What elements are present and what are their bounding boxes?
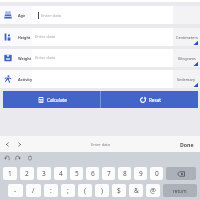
- button[interactable]: Enter data: [32, 6, 173, 24]
- staticText: 9: [139, 169, 143, 178]
- button[interactable]: Previous field: [4, 141, 11, 148]
- button[interactable]: Sedentary: [173, 70, 200, 88]
- button[interactable]: Activity: [0, 70, 200, 88]
- button[interactable]: Backspace: [166, 167, 196, 180]
- button[interactable]: &: [129, 184, 143, 197]
- staticText: /: [32, 186, 35, 195]
- staticText: 0: [155, 169, 159, 178]
- staticText: Done: [180, 141, 194, 148]
- button[interactable]: 0: [150, 167, 163, 180]
- button[interactable]: Undo: [4, 155, 10, 161]
- button[interactable]: ): [95, 184, 109, 197]
- button[interactable]: Enter data: [32, 28, 173, 46]
- button[interactable]: $: [112, 184, 126, 197]
- button[interactable]: Age: [0, 6, 200, 24]
- button[interactable]: Height: [0, 28, 200, 46]
- staticText: Activity: [18, 77, 33, 82]
- staticText: ): [101, 186, 103, 195]
- staticText: 8: [123, 169, 127, 178]
- staticText: 2: [25, 169, 29, 178]
- button[interactable]: Paste: [27, 155, 33, 161]
- staticText: ;: [67, 186, 69, 195]
- button[interactable]: Enter data: [32, 49, 173, 67]
- button[interactable]: Reset: [101, 91, 198, 108]
- staticText: 5: [75, 169, 79, 178]
- button[interactable]: :: [44, 184, 58, 197]
- button[interactable]: /: [26, 184, 41, 197]
- staticText: 4: [59, 169, 63, 178]
- staticText: 6: [91, 169, 95, 178]
- button[interactable]: 9: [134, 167, 147, 180]
- staticText: Height: [18, 35, 31, 40]
- button[interactable]: Calculate: [3, 91, 100, 108]
- button[interactable]: 3: [37, 167, 51, 180]
- button[interactable]: Done: [178, 141, 196, 148]
- button[interactable]: 6: [86, 167, 99, 180]
- staticText: Enter data: [35, 55, 56, 61]
- staticText: (: [84, 186, 86, 195]
- button[interactable]: 7: [102, 167, 115, 180]
- staticText: @: [150, 186, 156, 195]
- staticText: Sedentary: [177, 77, 196, 82]
- staticText: 3: [42, 169, 46, 178]
- button[interactable]: (: [78, 184, 92, 197]
- staticText: Centimeters: [176, 35, 198, 40]
- button[interactable]: -: [8, 184, 23, 197]
- staticText: 7: [107, 169, 111, 178]
- staticText: Enter data: [91, 142, 110, 147]
- staticText: Reset: [149, 97, 161, 103]
- staticText: return: [173, 188, 187, 194]
- staticText: -: [14, 186, 17, 195]
- staticText: 1: [8, 169, 12, 178]
- staticText: Age: [18, 13, 26, 18]
- button[interactable]: 1: [3, 167, 17, 180]
- button[interactable]: @: [146, 184, 160, 197]
- button[interactable]: Weight: [0, 49, 200, 67]
- button[interactable]: 2: [20, 167, 34, 180]
- staticText: Enter data: [35, 34, 56, 40]
- staticText: :: [50, 186, 52, 195]
- staticText: $: [117, 186, 121, 195]
- button[interactable]: Redo: [15, 155, 21, 161]
- button[interactable]: Next field: [16, 141, 23, 148]
- button[interactable]: return: [163, 184, 197, 197]
- button[interactable]: Centimeters: [173, 28, 200, 46]
- button[interactable]: Kilograms: [173, 49, 200, 67]
- staticText: Weight: [18, 56, 32, 61]
- button[interactable]: ;: [61, 184, 75, 197]
- staticText: Enter data: [41, 13, 62, 19]
- button[interactable]: 5: [70, 167, 83, 180]
- button[interactable]: 8: [118, 167, 131, 180]
- staticText: Calculate: [47, 97, 67, 103]
- button[interactable]: 4: [54, 167, 67, 180]
- staticText: Kilograms: [178, 56, 196, 61]
- staticText: &: [134, 186, 139, 195]
